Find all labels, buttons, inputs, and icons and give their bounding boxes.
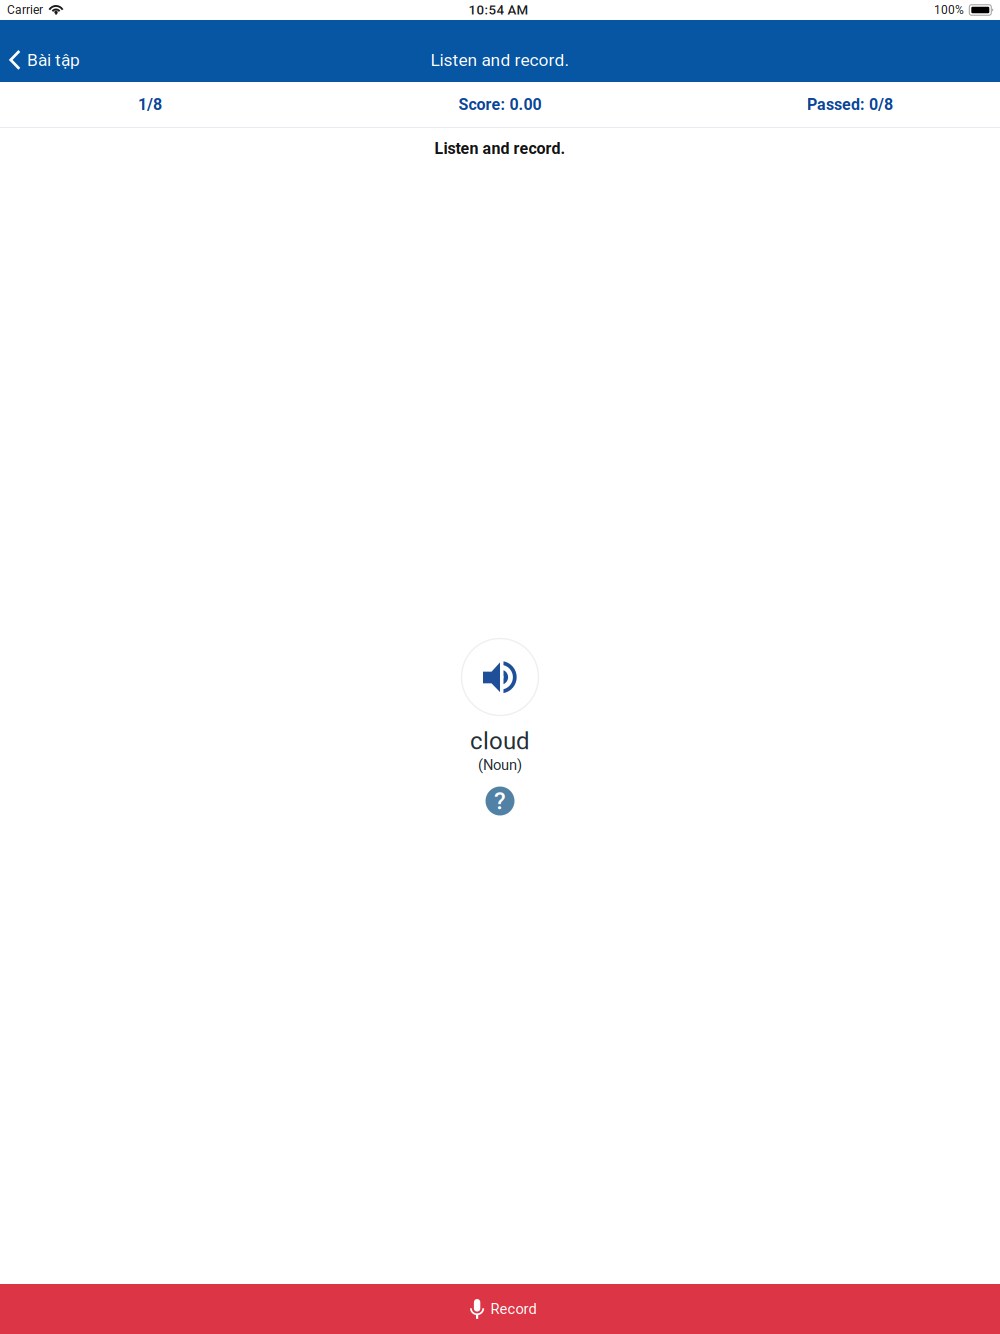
staticText: Carrier [7, 3, 43, 17]
button[interactable]: Show hint [485, 786, 514, 815]
button[interactable]: Bài tập [0, 38, 92, 82]
staticText: 10:54 AM [468, 2, 528, 18]
staticText: Bài tập [27, 50, 80, 70]
button[interactable]: Record [0, 1284, 1000, 1334]
staticText: cloud [470, 727, 530, 755]
staticText: ? [494, 787, 506, 815]
button[interactable]: Play pronunciation [461, 638, 538, 715]
staticText: Listen and record. [430, 50, 569, 70]
staticText: 100% [934, 3, 964, 17]
staticText: 1/8 [138, 95, 162, 114]
staticText: Passed: 0/8 [807, 95, 893, 114]
staticText: Record [490, 1300, 536, 1318]
staticText: (Noun) [478, 756, 522, 774]
staticText: Listen and record. [434, 139, 565, 158]
staticText: Score: 0.00 [458, 95, 541, 114]
